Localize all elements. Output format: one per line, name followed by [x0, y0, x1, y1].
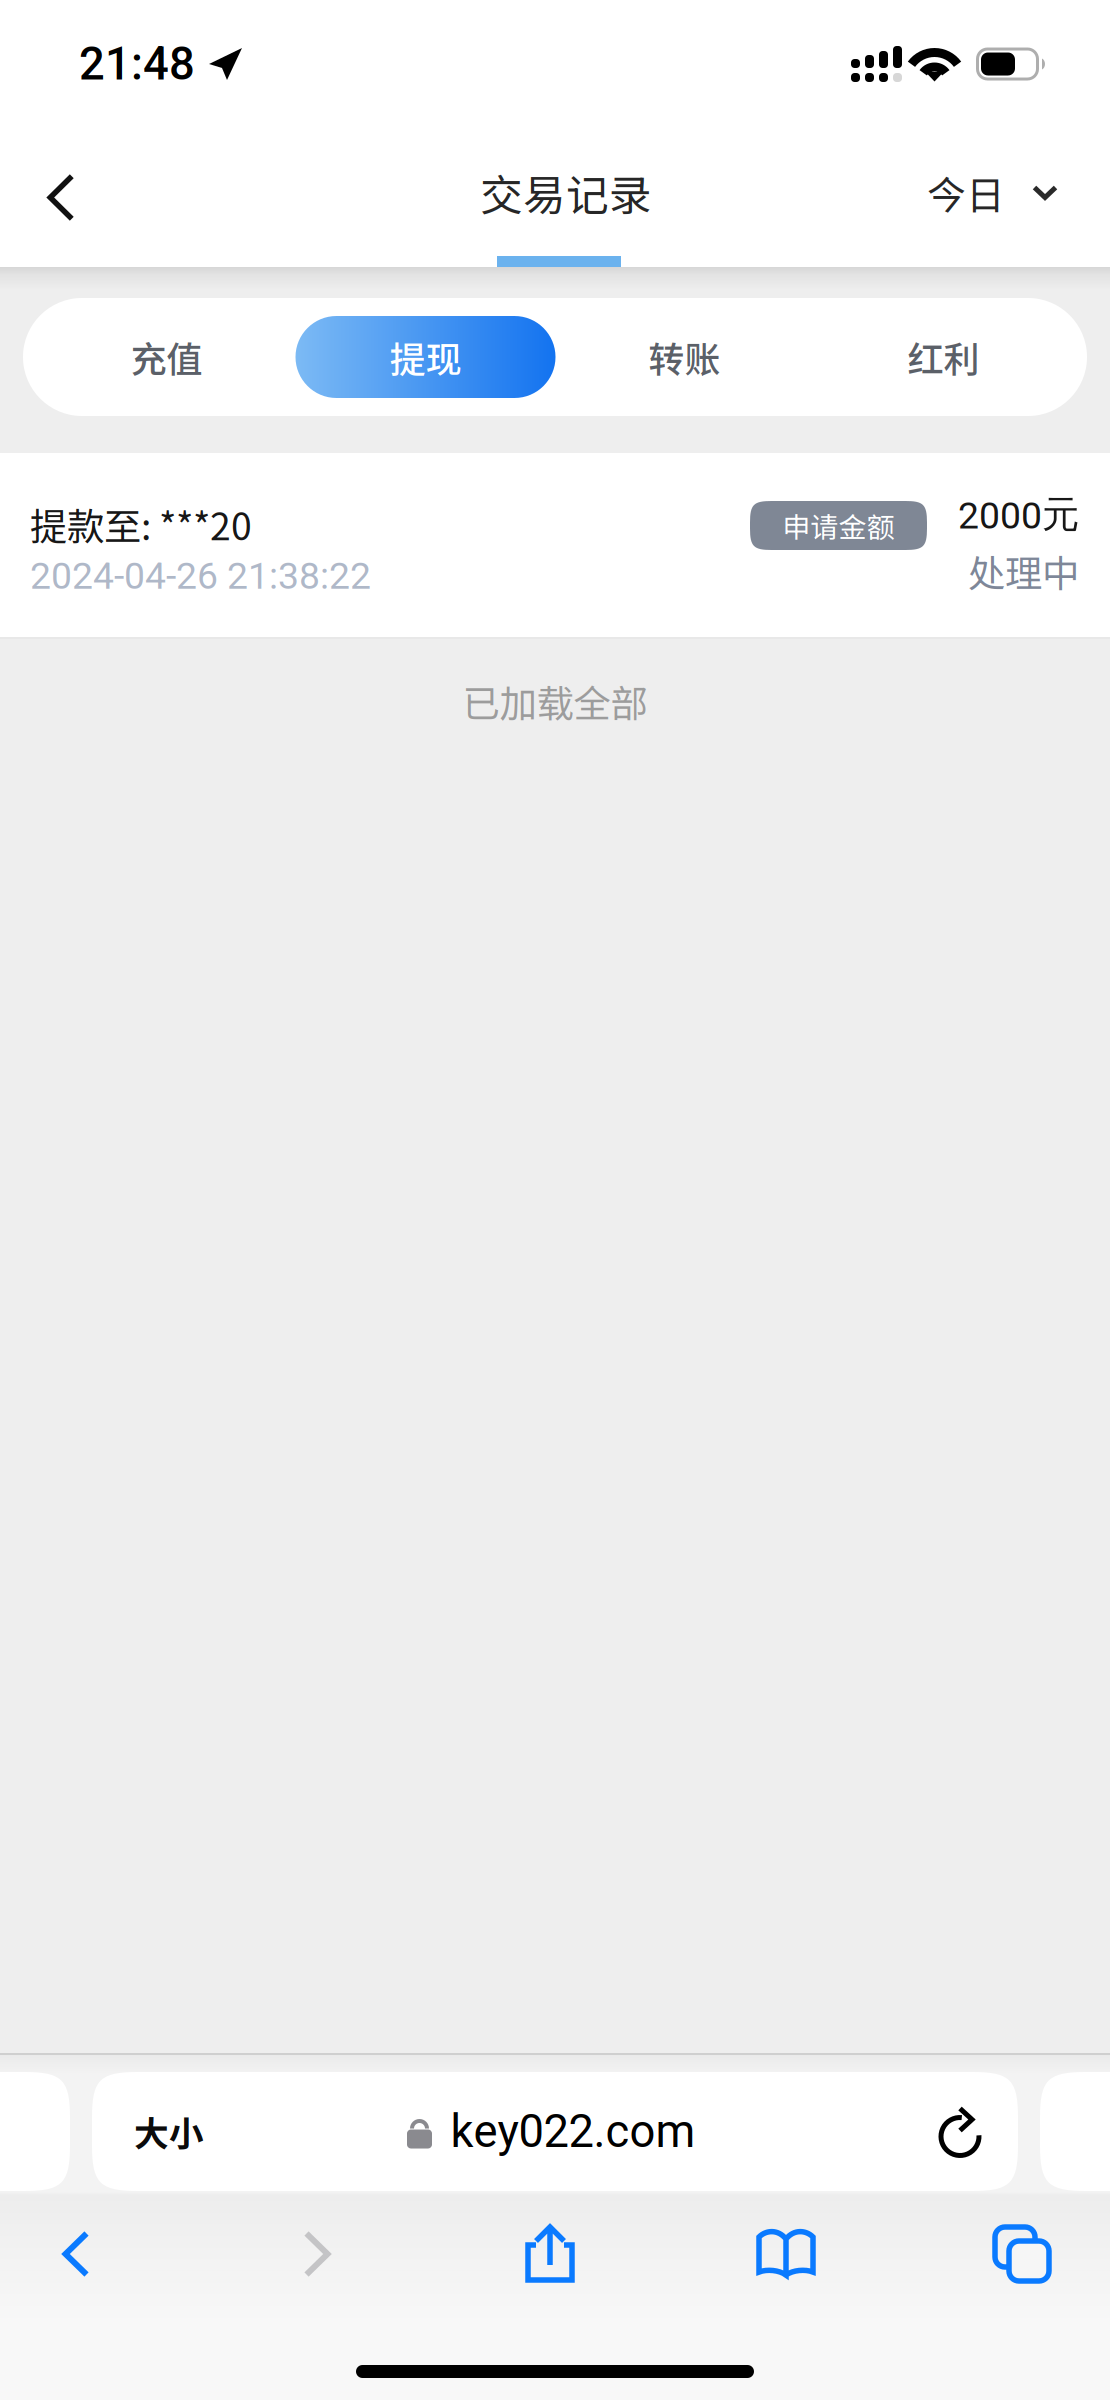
staticText: 转账 [648, 331, 720, 383]
button[interactable]: Tabs [974, 2212, 1070, 2296]
staticText: 充值 [130, 331, 202, 383]
button[interactable]: Bookmarks [738, 2212, 834, 2296]
button[interactable]: 红利 [814, 298, 1073, 416]
staticText: 2024-04-26 21:38:22 [30, 554, 371, 598]
button[interactable]: Share [502, 2212, 598, 2296]
staticText: 今日 [927, 164, 1005, 220]
button[interactable]: 转账 [555, 298, 814, 416]
button[interactable]: 提款至: ***20 [0, 453, 1110, 637]
button[interactable]: Back [0, 128, 122, 267]
staticText: 大小 [134, 2106, 204, 2157]
staticText: 提现 [389, 331, 461, 383]
button[interactable]: Forward [269, 2212, 365, 2296]
button[interactable]: 今日 [927, 128, 1110, 267]
staticText: 已加载全部 [462, 674, 647, 728]
button[interactable]: Reload [868, 2072, 1018, 2191]
staticText: 21:48 [79, 37, 195, 90]
staticText: 提款至: ***20 [30, 497, 252, 551]
button[interactable]: 大小 [92, 2072, 246, 2191]
staticText: 交易记录 [480, 162, 652, 223]
staticText: key022.com [450, 2105, 695, 2158]
staticText: 红利 [907, 331, 979, 383]
button[interactable]: Back [28, 2212, 124, 2296]
button[interactable]: 充值 [37, 298, 296, 416]
staticText: 处理中 [968, 544, 1079, 598]
staticText: 申请金额 [782, 505, 894, 546]
button[interactable]: 提现 [296, 298, 555, 416]
staticText: 2000元 [958, 491, 1079, 538]
